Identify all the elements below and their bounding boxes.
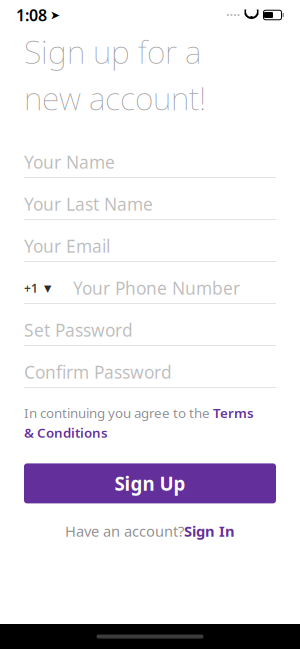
button[interactable]: Your Email [24, 231, 276, 262]
staticText: Sign Up [114, 471, 185, 496]
staticText: ▾ [44, 280, 51, 296]
staticText: ➤ [50, 8, 60, 22]
staticText: Your Phone Number [73, 276, 240, 299]
staticText: Have an account? [65, 521, 184, 541]
staticText: Your Name [24, 150, 115, 173]
staticText: Sign In [184, 521, 235, 541]
button[interactable]: Your Name [24, 147, 276, 178]
button[interactable]: Have an account? [65, 521, 235, 541]
staticText: Set Password [24, 318, 133, 341]
button[interactable]: Set Password [24, 315, 276, 346]
staticText: Terms [213, 404, 254, 422]
button[interactable]: +1 [24, 273, 276, 304]
button[interactable]: Confirm Password [24, 357, 276, 388]
staticText: +1 [24, 280, 38, 296]
staticText: Confirm Password [24, 360, 172, 383]
button[interactable]: Your Last Name [24, 189, 276, 220]
button[interactable]: In continuing you agree to the [24, 404, 276, 441]
staticText: new account! [24, 76, 206, 119]
staticText: In continuing you agree to the [24, 404, 213, 422]
staticText: Your Last Name [24, 192, 153, 215]
button[interactable]: Sign Up [24, 463, 276, 503]
staticText: 1:08 [16, 4, 47, 26]
staticText: Your Email [24, 234, 110, 257]
staticText: Sign up for a [24, 30, 201, 72]
staticText: & Conditions [24, 424, 108, 441]
